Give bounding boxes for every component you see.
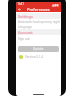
staticText: ▲●▮ <box>52 3 59 6</box>
button[interactable]: Version 2.1.4 <box>19 54 61 60</box>
button[interactable]: Automatic backup every night <box>16 19 61 24</box>
staticText: 9:41 <box>18 2 24 6</box>
staticText: Language <box>18 25 33 29</box>
staticText: Account <box>18 30 33 35</box>
staticText: Version 2.1.4 <box>25 55 44 59</box>
button[interactable]: Language <box>16 24 61 29</box>
button[interactable]: Back <box>16 6 23 12</box>
staticText: Preferences <box>27 7 50 12</box>
staticText: Sign out <box>18 37 30 41</box>
staticText: Update <box>33 47 44 51</box>
button[interactable]: Sign out <box>16 36 61 41</box>
staticText: Automatic backup every night <box>18 20 61 24</box>
button[interactable]: Update <box>18 46 59 52</box>
staticText: Settings <box>18 14 33 19</box>
